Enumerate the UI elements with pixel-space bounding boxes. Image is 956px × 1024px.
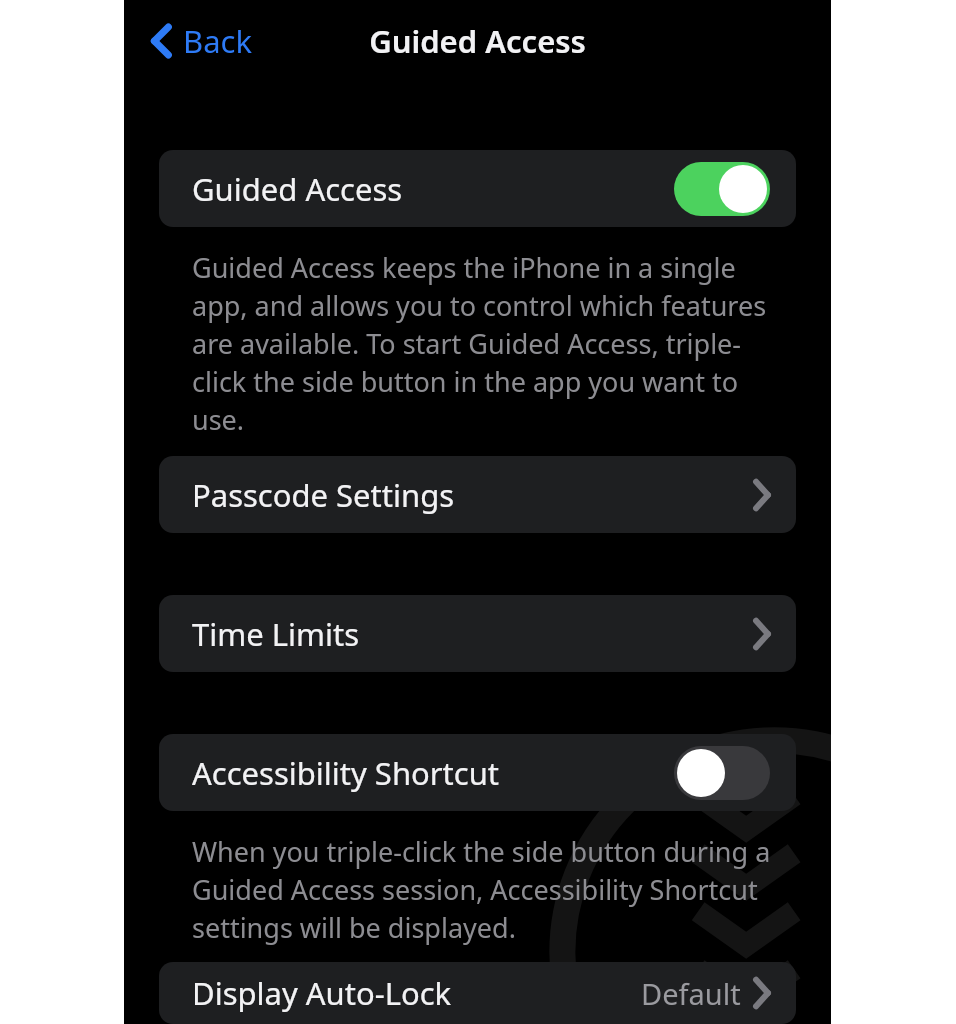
staticText: Guided Access	[369, 20, 586, 62]
button[interactable]: Display Auto-Lock	[159, 962, 796, 1024]
staticText: Back	[183, 20, 252, 62]
button[interactable]: Back	[146, 14, 258, 68]
staticText: Time Limits	[192, 613, 745, 655]
button[interactable]: Off	[674, 746, 770, 800]
other: Open	[753, 619, 770, 649]
button[interactable]: Guided Access	[159, 150, 796, 227]
button[interactable]: Accessibility Shortcut	[159, 734, 796, 811]
staticText: Default	[641, 974, 741, 1013]
other: Open	[753, 480, 770, 510]
button[interactable]: Time Limits	[159, 595, 796, 672]
staticText: When you triple-click the side button du…	[192, 833, 793, 946]
other: Open	[753, 978, 770, 1008]
staticText: Passcode Settings	[192, 474, 745, 516]
staticText: Guided Access keeps the iPhone in a sing…	[192, 249, 793, 438]
button[interactable]: Passcode Settings	[159, 456, 796, 533]
staticText: Accessibility Shortcut	[192, 752, 666, 794]
button[interactable]: On	[674, 162, 770, 216]
staticText: Display Auto-Lock	[192, 972, 633, 1014]
staticText: Guided Access	[192, 168, 666, 210]
